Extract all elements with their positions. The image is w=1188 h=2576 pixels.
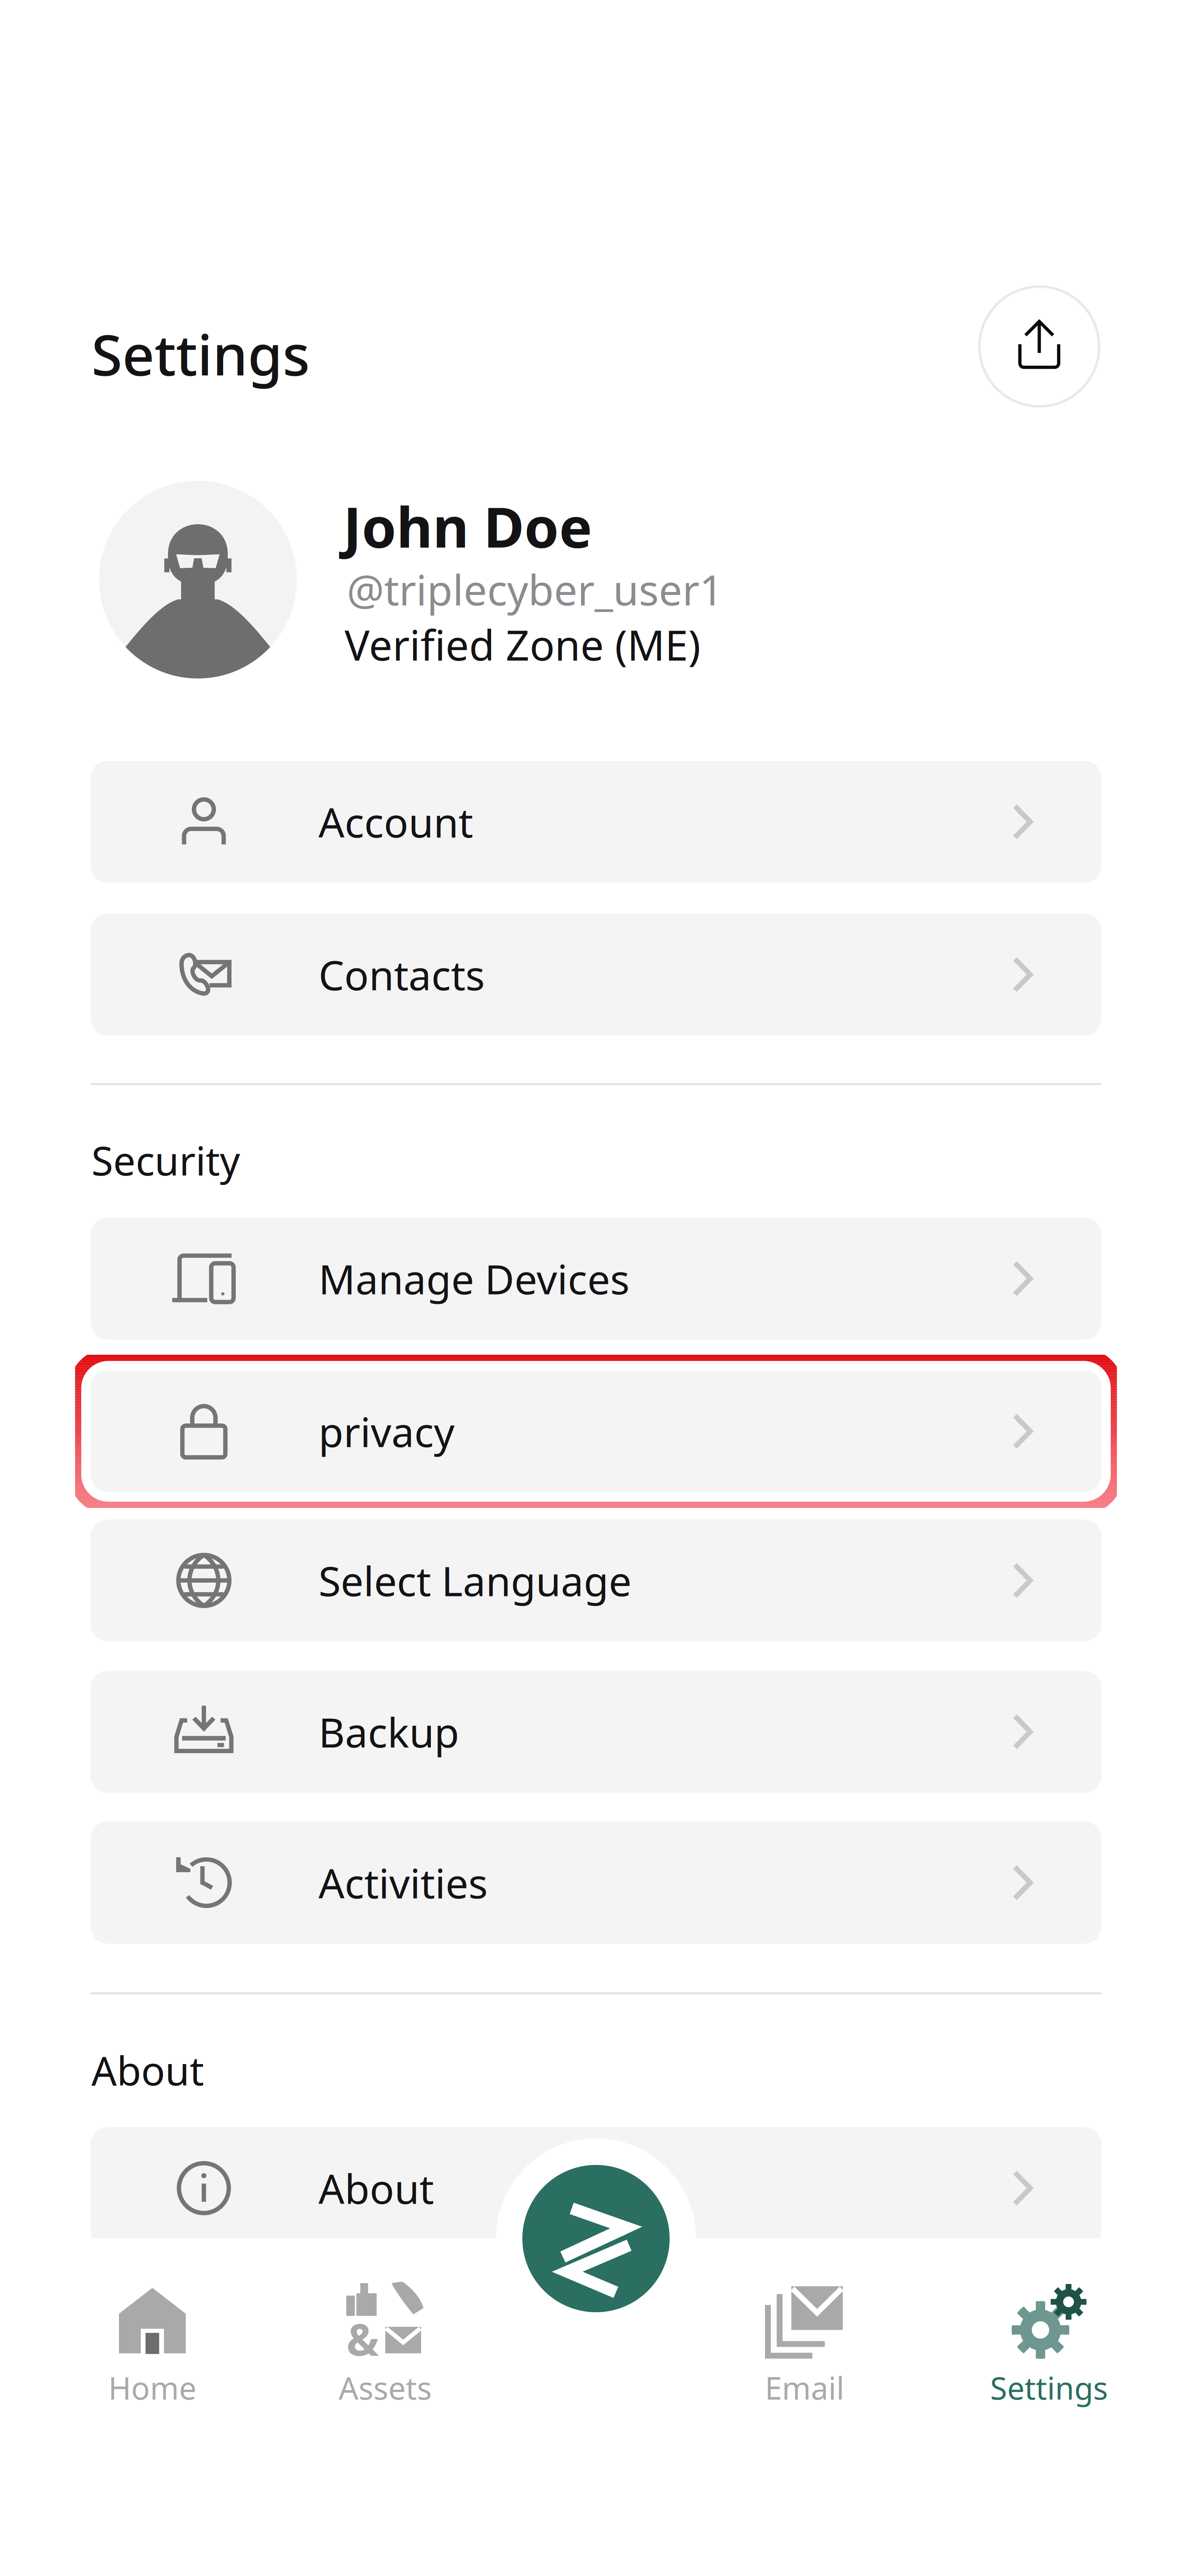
- staticText: John Doe: [343, 489, 592, 563]
- button[interactable]: &: [291, 2284, 480, 2419]
- staticText: &: [346, 2310, 379, 2368]
- button[interactable]: Settings: [955, 2284, 1143, 2419]
- staticText: Contacts: [318, 948, 485, 1001]
- button[interactable]: Email: [710, 2284, 899, 2419]
- button[interactable]: Scan: [522, 2165, 670, 2312]
- button[interactable]: Share: [979, 286, 1100, 407]
- button[interactable]: Account: [91, 761, 1101, 883]
- staticText: Assets: [339, 2367, 432, 2408]
- button[interactable]: Contacts: [91, 914, 1101, 1035]
- staticText: Email: [765, 2367, 844, 2408]
- button[interactable]: Manage Devices: [91, 1218, 1101, 1340]
- staticText: Account: [318, 795, 473, 849]
- staticText: privacy: [318, 1404, 455, 1458]
- staticText: Verified Zone (ME): [345, 617, 700, 672]
- staticText: Security: [91, 1134, 240, 1186]
- staticText: Manage Devices: [318, 1252, 630, 1306]
- staticText: @triplecyber_user1: [347, 562, 723, 617]
- staticText: Settings: [91, 316, 310, 391]
- button[interactable]: privacy: [91, 1370, 1101, 1492]
- staticText: Home: [108, 2367, 196, 2408]
- staticText: Settings: [990, 2367, 1108, 2408]
- staticText: About: [91, 2044, 204, 2096]
- button[interactable]: Home: [58, 2284, 247, 2419]
- button[interactable]: About: [91, 2127, 1101, 2249]
- staticText: Select Language: [318, 1553, 632, 1607]
- staticText: Activities: [318, 1856, 488, 1910]
- button[interactable]: Select Language: [91, 1519, 1101, 1641]
- staticText: Backup: [318, 1705, 459, 1759]
- button[interactable]: Backup: [91, 1671, 1101, 1793]
- button[interactable]: Activities: [91, 1822, 1101, 1944]
- staticText: About: [318, 2161, 434, 2215]
